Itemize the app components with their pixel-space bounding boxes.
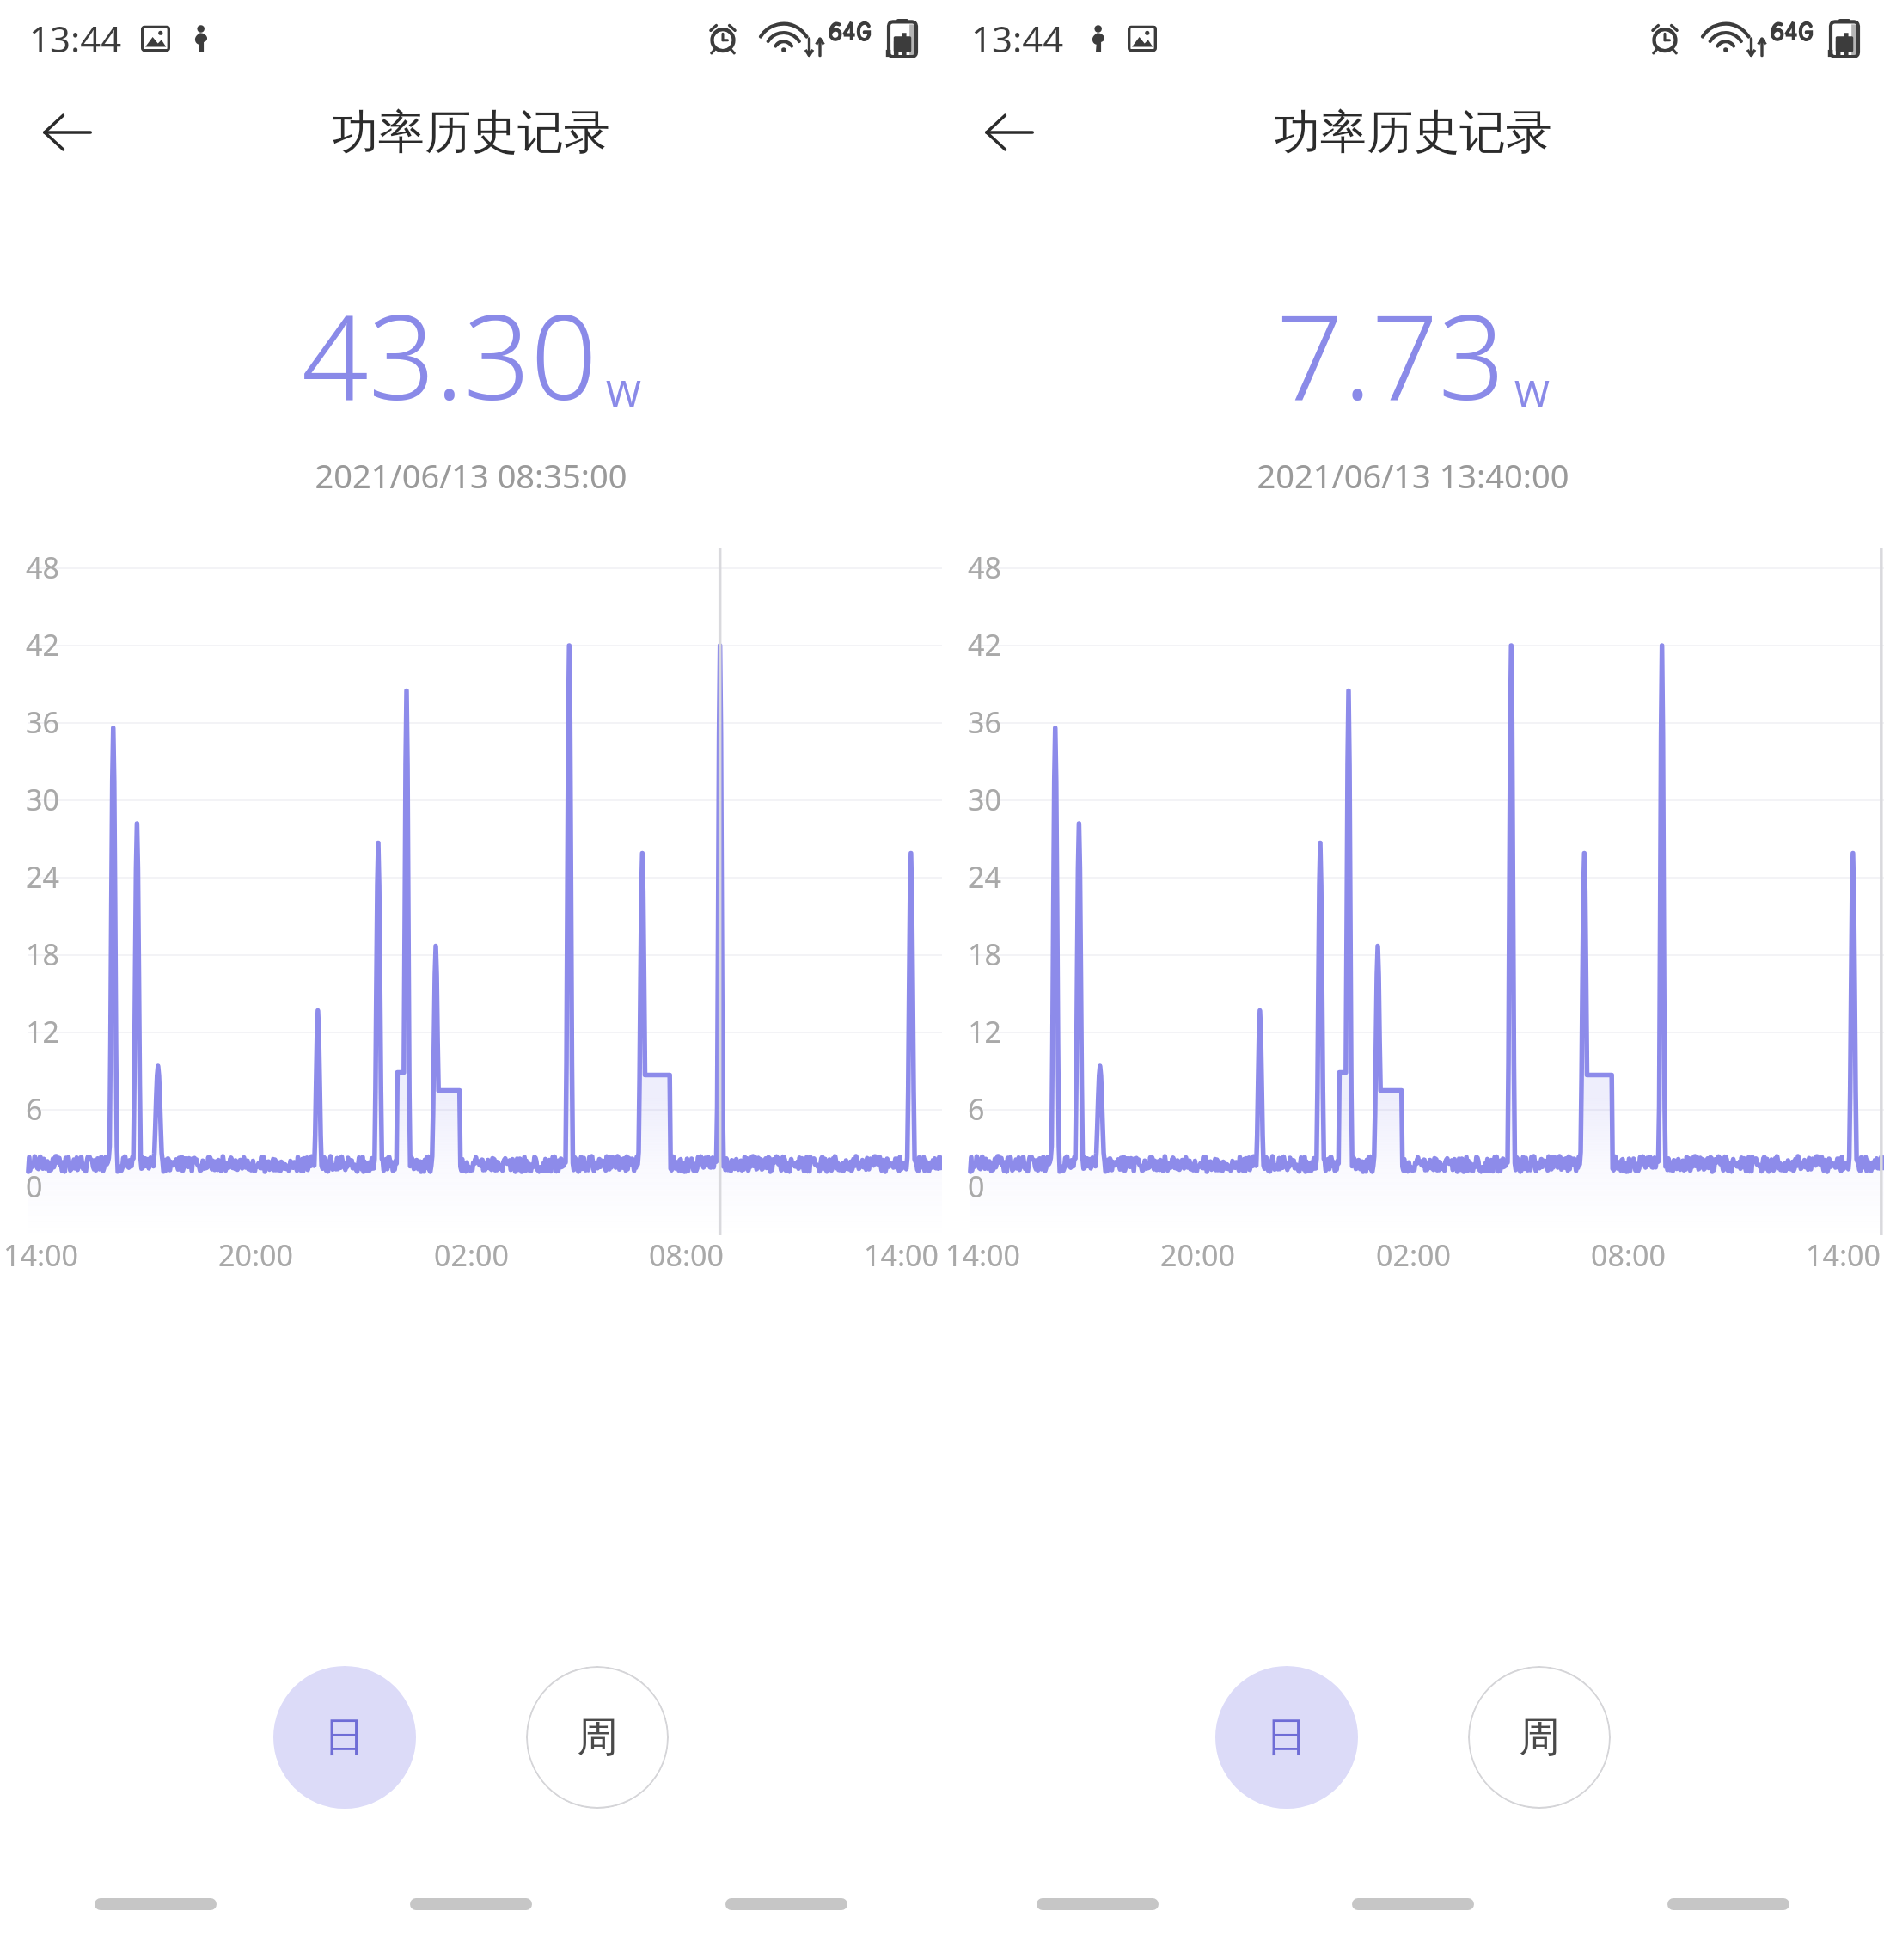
staticText: 20:00 [218,1235,293,1275]
staticText: 12 [968,1012,1001,1051]
staticText: 02:00 [434,1235,509,1275]
button[interactable]: System navigation [410,1898,532,1910]
staticText: 功率历史记录 [332,103,610,162]
staticText: 6 [26,1089,43,1129]
button[interactable]: System navigation [95,1898,217,1910]
staticText: 6 [968,1089,985,1129]
staticText: 周 [577,1712,618,1763]
staticText: 20:00 [1160,1235,1235,1275]
button[interactable]: 周 [1468,1666,1611,1809]
staticText: 30 [968,780,1001,819]
staticText: 18 [968,934,1001,974]
staticText: 30 [26,780,59,819]
staticText: W [1514,367,1550,419]
staticText: 14:00 [1806,1235,1881,1275]
staticText: 48 [26,548,59,587]
staticText: 14:00 [3,1235,78,1275]
button[interactable]: System navigation [1667,1898,1789,1910]
staticText: 42 [26,625,59,665]
staticText: 0 [968,1167,985,1206]
staticText: 48 [968,548,1001,587]
staticText: W [606,367,641,419]
staticText: 14:00 [864,1235,939,1275]
staticText: 12 [26,1012,59,1051]
staticText: 7.73 [1276,275,1506,434]
staticText: 18 [26,934,59,974]
button[interactable]: System navigation [1037,1898,1159,1910]
button[interactable]: Back [968,91,1050,174]
staticText: 13:44 [29,14,122,63]
button[interactable]: System navigation [1352,1898,1474,1910]
staticText: 2021/06/13 08:35:00 [0,453,942,498]
staticText: 13:44 [971,14,1064,63]
staticText: 24 [968,857,1001,897]
staticText: 08:00 [1591,1235,1666,1275]
staticText: 功率历史记录 [1274,103,1552,162]
button[interactable]: Back [26,91,108,174]
staticText: 0 [26,1167,43,1206]
staticText: 14:00 [945,1235,1020,1275]
staticText: 36 [26,702,59,742]
staticText: 42 [968,625,1001,665]
button[interactable]: 日 [273,1666,416,1809]
staticText: 日 [1266,1712,1307,1763]
staticText: 43.30 [302,275,597,434]
staticText: 08:00 [649,1235,724,1275]
staticText: 36 [968,702,1001,742]
staticText: 24 [26,857,59,897]
staticText: 周 [1519,1712,1560,1763]
button[interactable]: System navigation [725,1898,847,1910]
staticText: 02:00 [1376,1235,1451,1275]
staticText: 日 [324,1712,365,1763]
button[interactable]: 周 [526,1666,669,1809]
staticText: 2021/06/13 13:40:00 [942,453,1884,498]
button[interactable]: 日 [1215,1666,1358,1809]
